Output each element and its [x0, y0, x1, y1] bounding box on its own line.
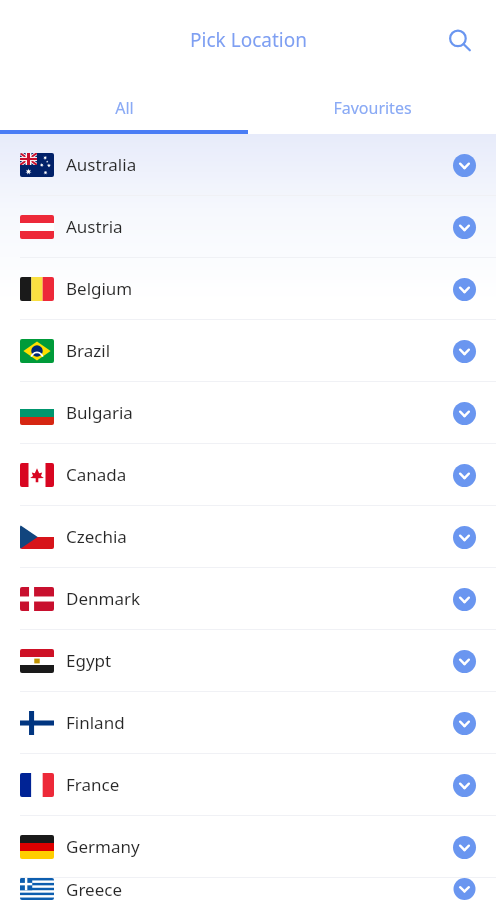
- button[interactable]: Germany: [0, 816, 496, 877]
- staticText: Greece: [66, 878, 444, 900]
- button[interactable]: France: [0, 754, 496, 815]
- staticText: France: [66, 773, 444, 796]
- button[interactable]: Canada: [0, 444, 496, 505]
- staticText: Brazil: [66, 339, 444, 362]
- staticText: Pick Location: [190, 27, 307, 53]
- button[interactable]: All: [0, 82, 248, 134]
- staticText: Favourites: [333, 97, 412, 119]
- button[interactable]: Favourites: [248, 82, 496, 134]
- button[interactable]: Expand Denmark: [444, 579, 484, 619]
- staticText: Egypt: [66, 649, 444, 672]
- staticText: Germany: [66, 835, 444, 858]
- staticText: Australia: [66, 153, 444, 176]
- staticText: Canada: [66, 463, 444, 486]
- button[interactable]: Austria: [0, 196, 496, 257]
- button[interactable]: Expand Austria: [444, 207, 484, 247]
- staticText: Czechia: [66, 525, 444, 548]
- button[interactable]: Expand Australia: [444, 145, 484, 185]
- button[interactable]: Expand Bulgaria: [444, 393, 484, 433]
- button[interactable]: Expand Czechia: [444, 517, 484, 557]
- button[interactable]: Expand Germany: [444, 827, 484, 867]
- button[interactable]: Expand Belgium: [444, 269, 484, 309]
- button[interactable]: Expand Finland: [444, 703, 484, 743]
- button[interactable]: Expand Greece: [444, 878, 484, 900]
- button[interactable]: Egypt: [0, 630, 496, 691]
- button[interactable]: Brazil: [0, 320, 496, 381]
- staticText: Bulgaria: [66, 401, 444, 424]
- button[interactable]: Belgium: [0, 258, 496, 319]
- staticText: All: [115, 97, 134, 119]
- button[interactable]: Finland: [0, 692, 496, 753]
- staticText: Austria: [66, 215, 444, 238]
- button[interactable]: Expand France: [444, 765, 484, 805]
- button[interactable]: Czechia: [0, 506, 496, 567]
- button[interactable]: Expand Brazil: [444, 331, 484, 371]
- button[interactable]: Expand Canada: [444, 455, 484, 495]
- staticText: Finland: [66, 711, 444, 734]
- button[interactable]: Search: [436, 17, 484, 65]
- staticText: Denmark: [66, 587, 444, 610]
- button[interactable]: Denmark: [0, 568, 496, 629]
- staticText: Belgium: [66, 277, 444, 300]
- button[interactable]: Expand Egypt: [444, 641, 484, 681]
- button[interactable]: Greece: [0, 878, 496, 900]
- button[interactable]: Australia: [0, 134, 496, 195]
- button[interactable]: Bulgaria: [0, 382, 496, 443]
